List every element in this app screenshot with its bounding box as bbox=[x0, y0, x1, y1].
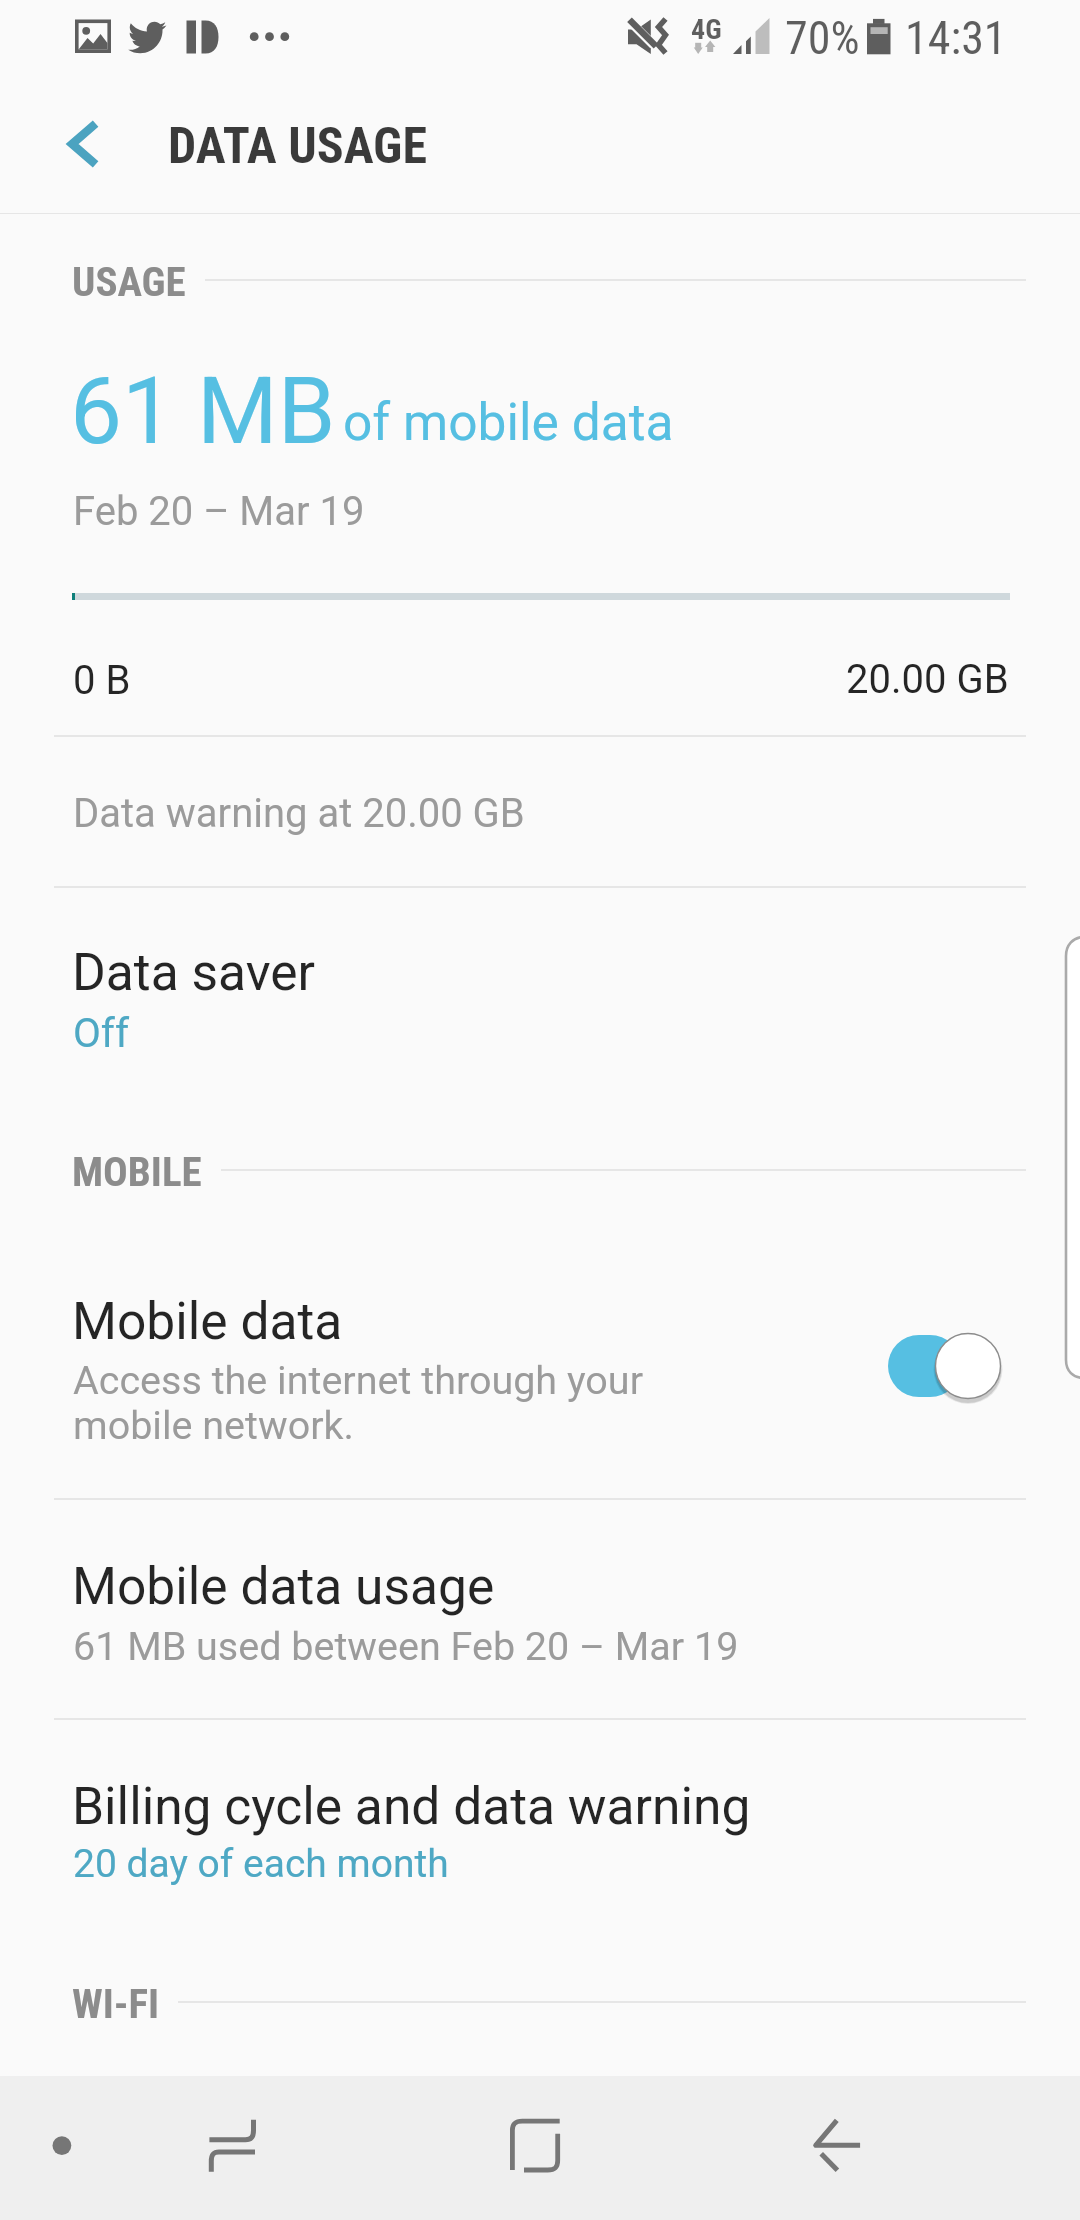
staticText: Mobile data usage bbox=[72, 1556, 495, 1616]
button[interactable]: Home bbox=[460, 2076, 606, 2220]
button[interactable]: Recent apps bbox=[160, 2076, 306, 2220]
staticText: of mobile data bbox=[343, 392, 674, 452]
staticText: Off bbox=[73, 1009, 130, 1056]
staticText: Access the internet through your mobile … bbox=[73, 1357, 644, 1449]
button[interactable]: Navigate up bbox=[26, 96, 138, 208]
staticText: 4G bbox=[691, 13, 722, 46]
staticText: 61 MB bbox=[70, 357, 336, 465]
staticText: 0 B bbox=[73, 657, 131, 704]
button[interactable]: Mobile data usage bbox=[0, 1499, 1080, 1718]
staticText: Data warning at 20.00 GB bbox=[73, 790, 525, 837]
button[interactable]: Data warning at 20.00 GB bbox=[0, 736, 1080, 886]
staticText: MOBILE bbox=[72, 1148, 202, 1196]
button[interactable]: Billing cycle and data warning bbox=[0, 1719, 1080, 1939]
staticText: 20.00 GB bbox=[846, 656, 1009, 703]
staticText: USAGE bbox=[72, 258, 186, 306]
staticText: Data saver bbox=[72, 942, 316, 1002]
staticText: 20 day of each month bbox=[73, 1841, 449, 1887]
button[interactable]: Data saver bbox=[0, 887, 1080, 1119]
button[interactable]: Mobile data on bbox=[884, 1331, 1008, 1407]
staticText: DATA USAGE bbox=[168, 117, 427, 176]
button[interactable]: Mobile data bbox=[0, 1255, 1080, 1498]
staticText: Feb 20 – Mar 19 bbox=[73, 488, 365, 535]
staticText: 61 MB used between Feb 20 – Mar 19 bbox=[73, 1623, 739, 1669]
staticText: Billing cycle and data warning bbox=[72, 1776, 751, 1836]
staticText: WI-FI bbox=[72, 1980, 160, 2028]
staticText: Mobile data bbox=[72, 1291, 343, 1351]
button[interactable]: Show menu bbox=[0, 2076, 146, 2220]
staticText: 70% bbox=[785, 11, 860, 65]
button[interactable]: Back bbox=[765, 2076, 911, 2220]
staticText: 14:31 bbox=[905, 11, 1007, 65]
